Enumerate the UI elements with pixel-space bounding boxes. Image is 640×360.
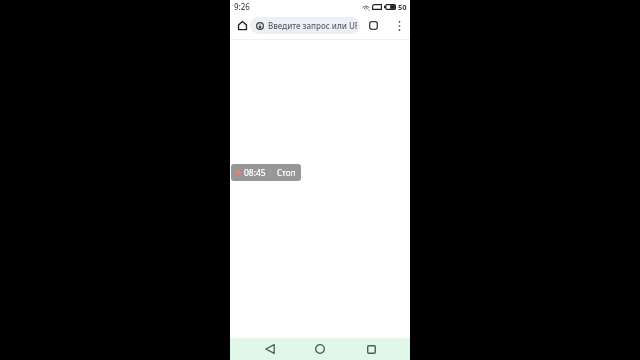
staticText: 9:26 <box>234 1 250 12</box>
button[interactable]: More options <box>392 14 410 37</box>
staticText: 08:45 <box>244 167 266 179</box>
button[interactable]: Recent apps <box>356 338 386 360</box>
button[interactable]: Home <box>305 338 335 360</box>
button[interactable]: 08:45 <box>231 164 301 181</box>
staticText: Введите запрос или URL <box>268 20 357 31</box>
button[interactable]: Введите запрос или URL <box>250 17 360 34</box>
button[interactable]: Switch tabs <box>370 14 392 37</box>
staticText: Стоп <box>277 167 296 178</box>
staticText: 50 <box>398 2 407 12</box>
button[interactable]: Back <box>255 338 285 360</box>
button[interactable]: Home <box>230 14 250 37</box>
